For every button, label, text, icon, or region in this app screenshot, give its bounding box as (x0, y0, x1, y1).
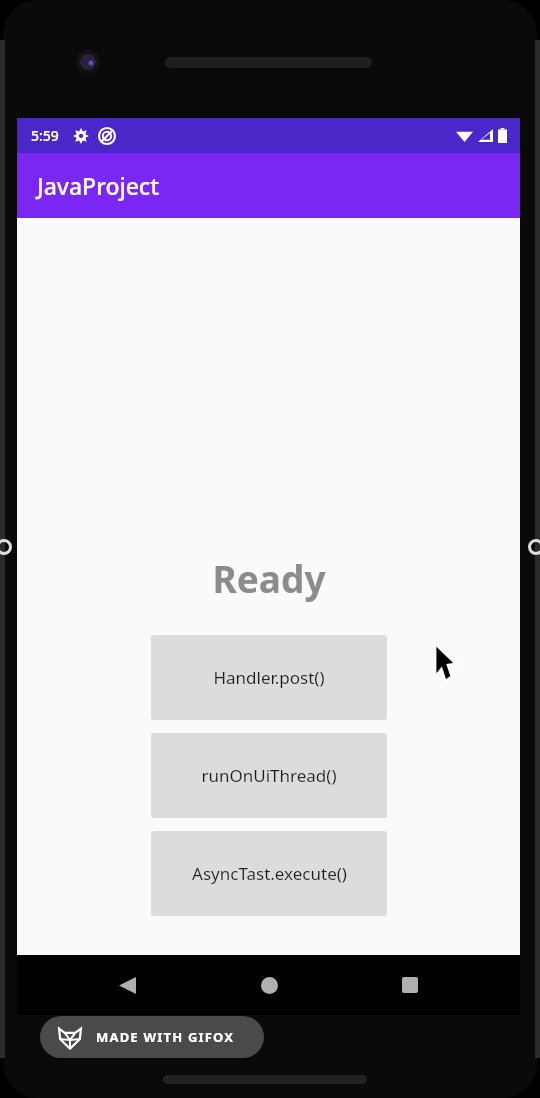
staticText: Ready (212, 553, 326, 603)
staticText: MADE WITH GIFOX (96, 1028, 235, 1046)
staticText: runOnUiThread() (201, 764, 337, 787)
button[interactable]: Recent apps (388, 963, 432, 1007)
staticText: JavaProject (37, 170, 159, 201)
button[interactable]: Home (247, 963, 291, 1007)
button[interactable]: runOnUiThread() (151, 733, 387, 818)
staticText: 5:59 (31, 126, 59, 145)
staticText: AsyncTast.execute() (192, 862, 347, 885)
button[interactable]: AsyncTast.execute() (151, 831, 387, 916)
button[interactable]: Handler.post() (151, 635, 387, 720)
button[interactable]: Back (105, 963, 149, 1007)
staticText: Handler.post() (213, 666, 325, 689)
